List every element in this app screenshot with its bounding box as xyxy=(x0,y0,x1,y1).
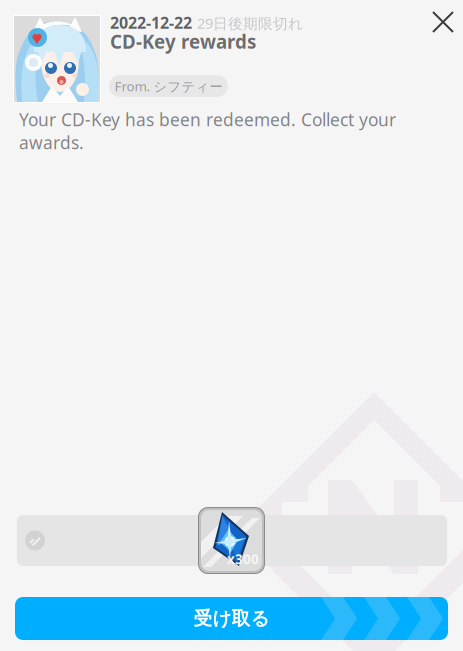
staticText: From. シフティー xyxy=(114,77,222,95)
staticText: x300 xyxy=(227,550,259,568)
staticText: CD-Key rewards xyxy=(110,29,256,54)
staticText: Your CD-Key has been redeemed. Collect y… xyxy=(19,108,396,154)
button[interactable]: Close xyxy=(422,1,463,43)
button[interactable]: 受け取る xyxy=(15,597,448,640)
staticText: 29日後期限切れ xyxy=(197,13,303,33)
staticText: 受け取る xyxy=(193,607,269,630)
staticText: 2022-12-22 xyxy=(110,12,192,33)
